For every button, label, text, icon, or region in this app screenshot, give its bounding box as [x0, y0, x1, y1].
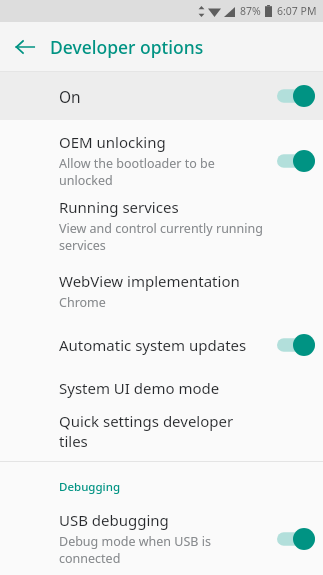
button[interactable]: Quick settings developer tiles — [0, 409, 323, 452]
staticText: 87% — [240, 4, 261, 18]
staticText: Automatic system updates — [59, 335, 247, 355]
staticText: USB debugging — [59, 510, 169, 530]
button[interactable]: System UI demo mode — [0, 366, 323, 409]
button[interactable]: USB debugging — [0, 506, 323, 571]
staticText: Debugging — [59, 479, 121, 495]
button[interactable]: Automatic system updates — [0, 323, 323, 366]
staticText: 6:07 PM — [277, 4, 317, 18]
staticText: System UI demo mode — [59, 378, 220, 398]
button[interactable]: Running services — [0, 193, 323, 258]
staticText: Allow the bootloader to be unlocked — [59, 155, 263, 189]
staticText: On — [59, 86, 81, 107]
staticText: Quick settings developer tiles — [59, 411, 263, 451]
staticText: View and control currently running servi… — [59, 220, 263, 254]
button[interactable]: Back — [8, 30, 42, 64]
staticText: Debug mode when USB is connected — [59, 533, 263, 567]
staticText: WebView implementation — [59, 271, 240, 291]
staticText: OEM unlocking — [59, 132, 166, 152]
button[interactable]: On — [0, 72, 323, 120]
staticText: Developer options — [50, 35, 204, 59]
button[interactable]: WebView implementation — [0, 258, 323, 323]
staticText: Chrome — [59, 294, 106, 311]
button[interactable]: OEM unlocking — [0, 128, 323, 193]
staticText: Running services — [59, 197, 179, 217]
